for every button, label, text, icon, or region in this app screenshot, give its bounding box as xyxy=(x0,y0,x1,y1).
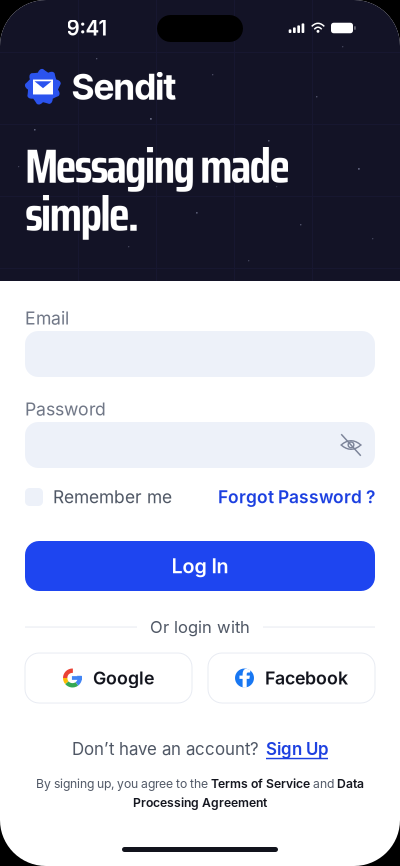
staticText: and xyxy=(310,776,337,791)
staticText: Sign Up xyxy=(266,739,328,759)
staticText: Data xyxy=(337,776,364,791)
staticText: Terms of Service xyxy=(211,776,310,791)
staticText: Remember me xyxy=(53,486,172,507)
button[interactable]: Show password xyxy=(329,422,373,468)
button[interactable]: Google xyxy=(25,653,192,703)
staticText: Google xyxy=(93,667,154,689)
staticText: Forgot Password ? xyxy=(218,486,375,507)
staticText: Email xyxy=(25,307,69,329)
staticText: simple. xyxy=(25,176,139,252)
button[interactable]: Facebook xyxy=(208,653,375,703)
staticText: Log In xyxy=(171,554,228,578)
staticText: By signing up, you agree to the xyxy=(36,776,211,791)
button[interactable]: Log In xyxy=(25,541,375,591)
staticText: Sendit xyxy=(72,66,176,108)
staticText: Processing Agreement xyxy=(133,795,267,810)
button[interactable]: Sign Up xyxy=(266,739,328,759)
button[interactable]: Terms of Service xyxy=(211,776,310,791)
button[interactable]: Processing Agreement xyxy=(133,795,267,810)
button[interactable]: Forgot Password ? xyxy=(218,484,375,510)
staticText: 9:41 xyxy=(66,15,107,40)
staticText: Don’t have an account? xyxy=(72,739,259,759)
staticText: Or login with xyxy=(150,617,250,637)
staticText: Facebook xyxy=(265,667,348,689)
button[interactable]: Remember me xyxy=(25,484,172,510)
staticText: Messaging made xyxy=(25,128,290,204)
button[interactable]: Data xyxy=(337,776,364,791)
staticText: Password xyxy=(25,398,106,420)
